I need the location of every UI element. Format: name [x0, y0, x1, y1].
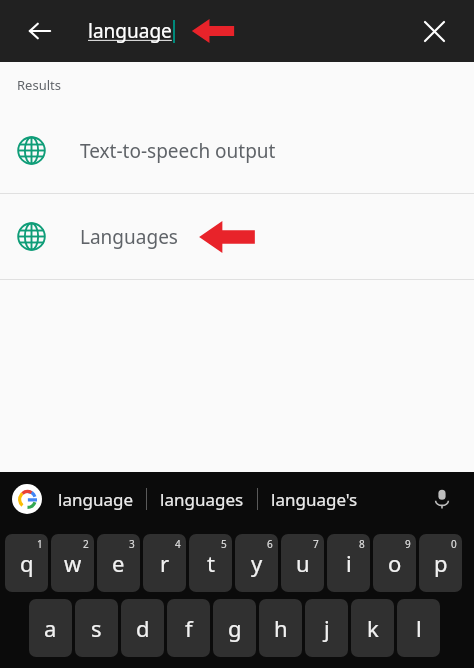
- button[interactable]: i: [327, 534, 370, 592]
- staticText: l: [416, 613, 422, 643]
- staticText: Languages: [80, 224, 178, 250]
- staticText: a: [44, 613, 57, 643]
- button[interactable]: q: [5, 534, 48, 592]
- staticText: language: [58, 488, 133, 511]
- staticText: k: [367, 613, 379, 643]
- button[interactable]: t: [189, 534, 232, 592]
- staticText: g: [228, 613, 242, 643]
- staticText: 7: [313, 537, 319, 551]
- staticText: i: [346, 548, 352, 578]
- staticText: r: [160, 548, 170, 578]
- button[interactable]: w: [51, 534, 94, 592]
- button[interactable]: Voice input: [424, 481, 460, 517]
- staticText: q: [20, 548, 34, 578]
- staticText: u: [296, 548, 310, 578]
- button[interactable]: s: [75, 599, 118, 657]
- staticText: s: [91, 613, 102, 643]
- button[interactable]: o: [373, 534, 416, 592]
- staticText: Text-to-speech output: [80, 138, 276, 164]
- button[interactable]: a: [29, 599, 72, 657]
- staticText: w: [64, 548, 82, 578]
- button[interactable]: Text-to-speech output: [0, 108, 474, 193]
- staticText: 0: [451, 537, 457, 551]
- staticText: languages: [160, 488, 244, 511]
- staticText: h: [274, 613, 288, 643]
- staticText: d: [136, 613, 150, 643]
- staticText: 3: [129, 537, 135, 551]
- staticText: 9: [405, 537, 411, 551]
- button[interactable]: u: [281, 534, 324, 592]
- staticText: f: [185, 613, 193, 643]
- staticText: e: [112, 548, 125, 578]
- staticText: y: [251, 548, 263, 578]
- button[interactable]: p: [419, 534, 462, 592]
- button[interactable]: language's: [271, 477, 358, 521]
- button[interactable]: j: [305, 599, 348, 657]
- button[interactable]: h: [259, 599, 302, 657]
- staticText: 1: [37, 537, 43, 551]
- staticText: 6: [267, 537, 273, 551]
- button[interactable]: Languages: [0, 194, 474, 279]
- button[interactable]: languages: [160, 477, 244, 521]
- button[interactable]: Clear: [412, 9, 456, 53]
- button[interactable]: r: [143, 534, 186, 592]
- staticText: o: [388, 548, 402, 578]
- button[interactable]: language: [58, 477, 133, 521]
- button[interactable]: d: [121, 599, 164, 657]
- staticText: p: [434, 548, 448, 578]
- button[interactable]: y: [235, 534, 278, 592]
- staticText: 5: [221, 537, 227, 551]
- button[interactable]: g: [213, 599, 256, 657]
- button[interactable]: l: [397, 599, 440, 657]
- staticText: language's: [271, 488, 358, 511]
- button[interactable]: f: [167, 599, 210, 657]
- button[interactable]: e: [97, 534, 140, 592]
- button[interactable]: language: [88, 18, 172, 44]
- staticText: 4: [175, 537, 181, 551]
- staticText: Results: [17, 76, 61, 94]
- staticText: 8: [359, 537, 365, 551]
- staticText: t: [207, 548, 215, 578]
- button[interactable]: Back: [18, 9, 62, 53]
- staticText: 2: [83, 537, 89, 551]
- button[interactable]: k: [351, 599, 394, 657]
- staticText: j: [324, 613, 330, 643]
